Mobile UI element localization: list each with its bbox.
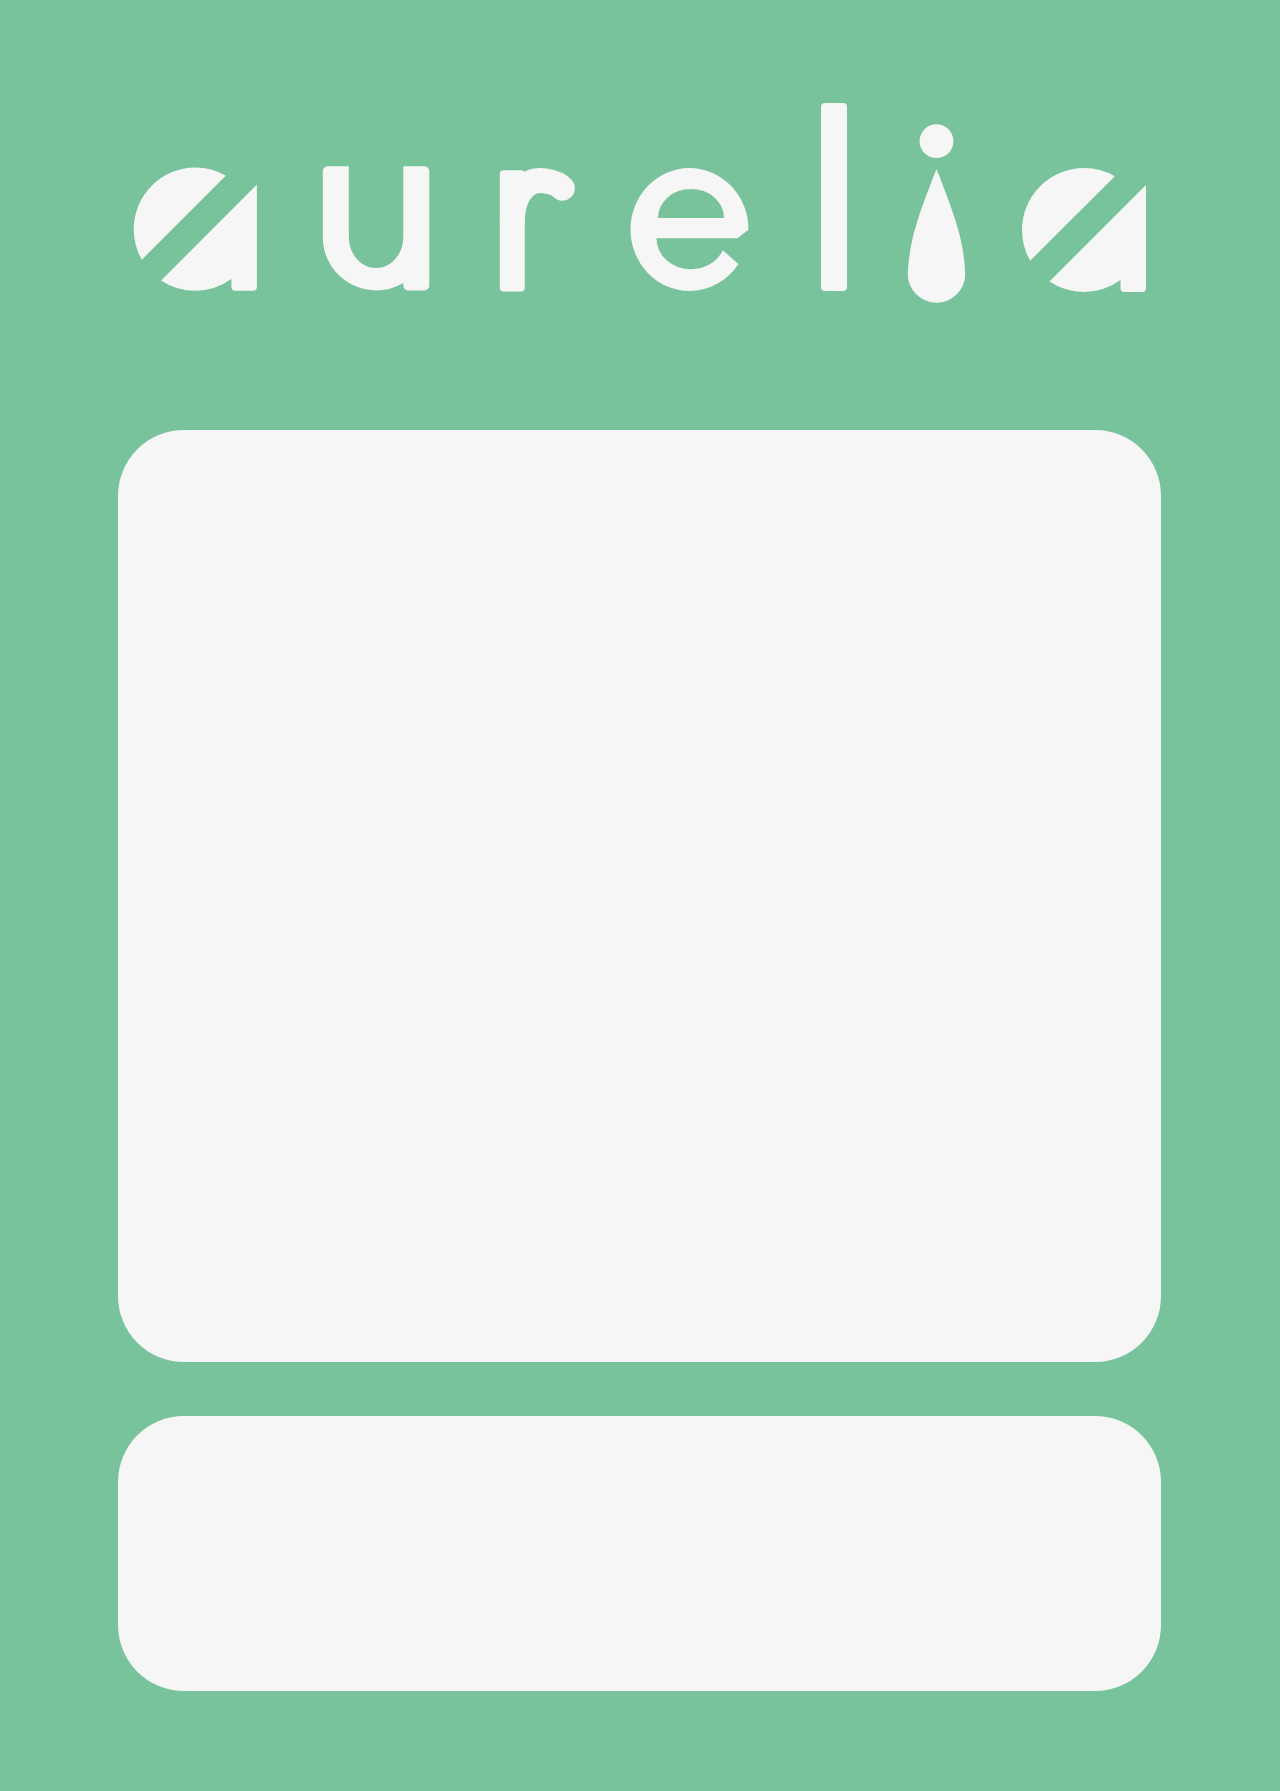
other: aurelia (0, 0, 1280, 1791)
button[interactable] (118, 1416, 1161, 1691)
button[interactable] (118, 430, 1161, 1362)
